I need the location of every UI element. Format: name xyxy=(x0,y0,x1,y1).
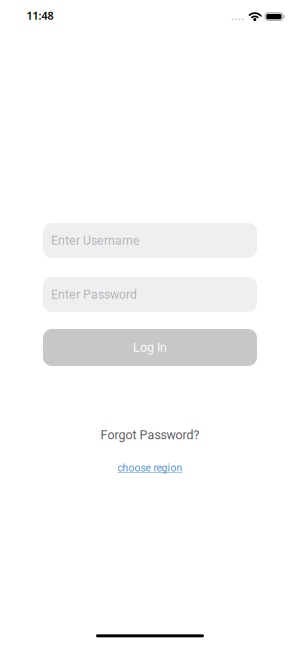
staticText: choose region xyxy=(117,462,182,474)
secureTextField[interactable]: Enter Password xyxy=(51,287,257,302)
staticText: 11:48 xyxy=(26,8,53,23)
button[interactable]: choose region xyxy=(117,462,182,474)
staticText: Enter Password xyxy=(51,287,137,302)
staticText: Forgot Password? xyxy=(100,428,199,442)
textField[interactable]: Enter Username xyxy=(51,233,257,248)
staticText: Log In xyxy=(133,340,167,355)
button[interactable]: Forgot Password? xyxy=(100,428,199,442)
button[interactable]: Log In xyxy=(43,329,257,366)
staticText: Enter Username xyxy=(51,233,140,248)
